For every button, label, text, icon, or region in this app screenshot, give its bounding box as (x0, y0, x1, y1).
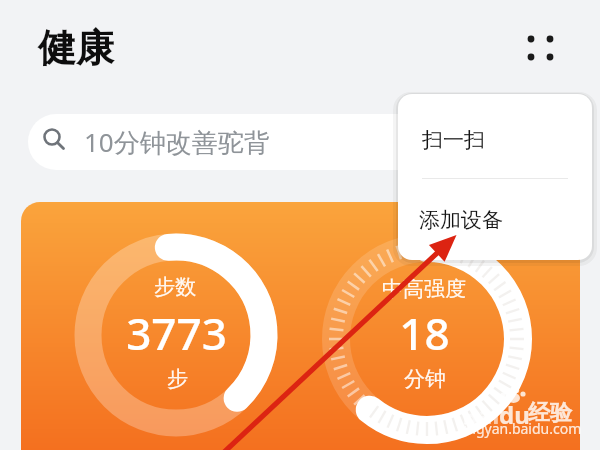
staticText: 中高强度 (382, 276, 466, 302)
staticText: 步数 (154, 274, 196, 300)
button[interactable]: 10分钟改善驼背 (28, 114, 572, 170)
button[interactable] (513, 21, 567, 75)
staticText: 3773 (126, 303, 227, 363)
staticText: 经验 (528, 399, 572, 427)
staticText: 步 (167, 366, 188, 392)
staticText: 扫一扫 (422, 127, 485, 153)
button[interactable] (21, 202, 580, 450)
staticText: du (499, 398, 530, 431)
staticText: 健康 (38, 24, 114, 72)
staticText: 10分钟改善驼背 (84, 124, 270, 160)
staticText: 添加设备 (419, 207, 503, 233)
staticText: jingyan.baidu.com (460, 419, 582, 438)
staticText: 分钟 (404, 366, 446, 392)
button[interactable]: 扫一扫 (398, 94, 592, 178)
staticText: 18 (399, 303, 450, 363)
button[interactable]: 添加设备 (398, 179, 592, 260)
staticText: Bai (462, 398, 500, 431)
